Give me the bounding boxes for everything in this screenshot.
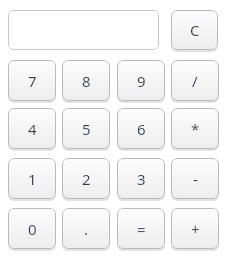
button[interactable]: 5 bbox=[62, 108, 110, 149]
staticText: 7 bbox=[28, 71, 37, 91]
button[interactable]: 9 bbox=[117, 60, 165, 101]
staticText: 2 bbox=[82, 169, 91, 189]
staticText: . bbox=[84, 219, 89, 239]
button[interactable]: C bbox=[171, 10, 218, 50]
staticText: = bbox=[137, 219, 146, 239]
button[interactable]: 8 bbox=[62, 60, 110, 101]
staticText: 1 bbox=[28, 169, 37, 189]
staticText: / bbox=[192, 71, 198, 91]
staticText: * bbox=[191, 119, 200, 139]
button[interactable]: = bbox=[117, 208, 165, 249]
staticText: 9 bbox=[137, 71, 146, 91]
button[interactable]: - bbox=[171, 158, 219, 199]
staticText: 3 bbox=[137, 169, 146, 189]
staticText: 4 bbox=[28, 119, 37, 139]
button[interactable]: 6 bbox=[117, 108, 165, 149]
button[interactable]: / bbox=[171, 60, 219, 101]
staticText: 5 bbox=[82, 119, 91, 139]
button[interactable]: 1 bbox=[8, 158, 56, 199]
button[interactable]: 2 bbox=[62, 158, 110, 199]
button[interactable]: * bbox=[171, 108, 219, 149]
button[interactable]: 4 bbox=[8, 108, 56, 149]
button[interactable]: 3 bbox=[117, 158, 165, 199]
button[interactable] bbox=[8, 10, 159, 50]
staticText: 8 bbox=[82, 71, 91, 91]
staticText: 0 bbox=[28, 219, 37, 239]
staticText: - bbox=[193, 169, 198, 189]
button[interactable]: . bbox=[62, 208, 110, 249]
button[interactable]: 0 bbox=[8, 208, 56, 249]
button[interactable]: 7 bbox=[8, 60, 56, 101]
staticText: C bbox=[190, 20, 200, 40]
button[interactable]: + bbox=[171, 208, 219, 249]
staticText: 6 bbox=[137, 119, 146, 139]
staticText: + bbox=[191, 219, 200, 239]
